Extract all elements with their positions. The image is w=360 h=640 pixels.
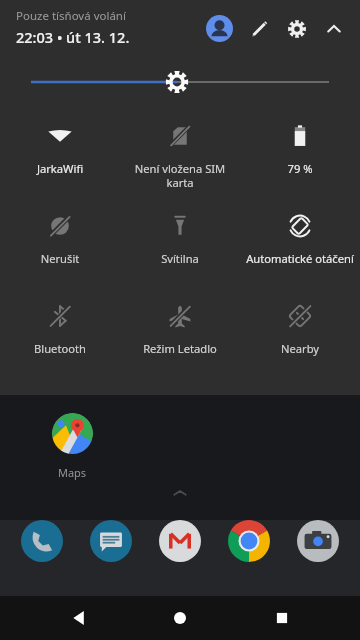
button[interactable]: Maps — [42, 413, 102, 480]
button[interactable]: Camera — [297, 520, 339, 562]
button[interactable]: Account — [206, 15, 233, 42]
button[interactable]: Messages — [90, 520, 132, 562]
staticText: Automatické otáčení — [244, 251, 356, 266]
button[interactable]: Phone — [21, 520, 63, 562]
button[interactable]: Nerušit — [0, 201, 120, 291]
staticText: Nerušit — [4, 251, 116, 266]
button[interactable]: Gmail — [159, 520, 201, 562]
button[interactable]: Chrome — [228, 520, 270, 562]
staticText: 79 % — [244, 161, 356, 176]
button[interactable]: JarkaWifi — [0, 111, 120, 201]
staticText: 22:03 • út 13. 12. — [16, 27, 130, 47]
staticText: Svítilna — [124, 251, 236, 266]
staticText: Maps — [42, 465, 102, 480]
button[interactable]: Nearby — [240, 291, 360, 381]
staticText: Nearby — [244, 341, 356, 356]
button[interactable]: Recent apps — [259, 596, 305, 640]
button[interactable]: Automatické otáčení — [240, 201, 360, 291]
button[interactable]: Back — [56, 596, 102, 640]
button[interactable]: Není vložena SIM karta — [120, 111, 240, 201]
staticText: JarkaWifi — [4, 161, 116, 176]
button[interactable]: Bluetooth — [0, 291, 120, 381]
staticText: Není vložena SIM karta — [124, 161, 236, 191]
button[interactable]: Svítilna — [120, 201, 240, 291]
staticText: Bluetooth — [4, 341, 116, 356]
button[interactable]: Home — [157, 596, 203, 640]
button[interactable]: Collapse — [322, 17, 346, 41]
staticText: Režim Letadlo — [124, 341, 236, 356]
staticText: Pouze tísňová volání — [16, 8, 126, 24]
button[interactable]: Režim Letadlo — [120, 291, 240, 381]
button[interactable]: Edit — [248, 17, 272, 41]
button[interactable]: Open app drawer — [167, 486, 193, 500]
button[interactable]: Brightness — [0, 69, 360, 95]
button[interactable]: Settings — [285, 17, 309, 41]
button[interactable]: 79 % — [240, 111, 360, 201]
